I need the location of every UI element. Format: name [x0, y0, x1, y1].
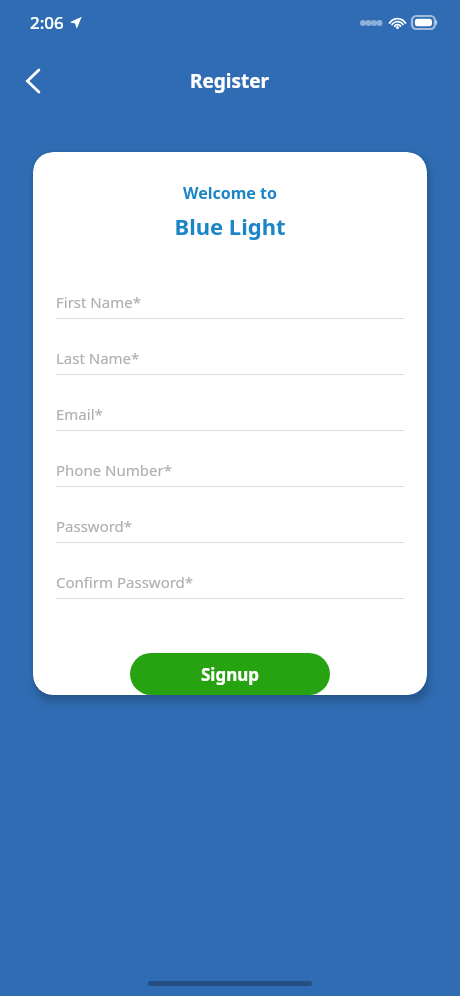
staticText: Email*: [56, 404, 103, 424]
button[interactable]: Signup: [130, 653, 330, 695]
staticText: First Name*: [56, 292, 141, 312]
button[interactable]: Confirm Password*: [56, 566, 404, 622]
button[interactable]: Back: [10, 58, 56, 104]
button[interactable]: Email*: [56, 398, 404, 454]
staticText: Password*: [56, 516, 133, 536]
staticText: Welcome to: [33, 182, 427, 204]
staticText: Register: [190, 68, 270, 94]
staticText: Last Name*: [56, 348, 140, 368]
button[interactable]: Phone Number*: [56, 454, 404, 510]
button[interactable]: First Name*: [56, 286, 404, 342]
staticText: Blue Light: [33, 211, 427, 241]
button[interactable]: Password*: [56, 510, 404, 566]
button[interactable]: Last Name*: [56, 342, 404, 398]
staticText: Phone Number*: [56, 460, 172, 480]
staticText: Confirm Password*: [56, 572, 194, 592]
staticText: 2:06: [30, 11, 64, 34]
staticText: Signup: [201, 663, 260, 686]
